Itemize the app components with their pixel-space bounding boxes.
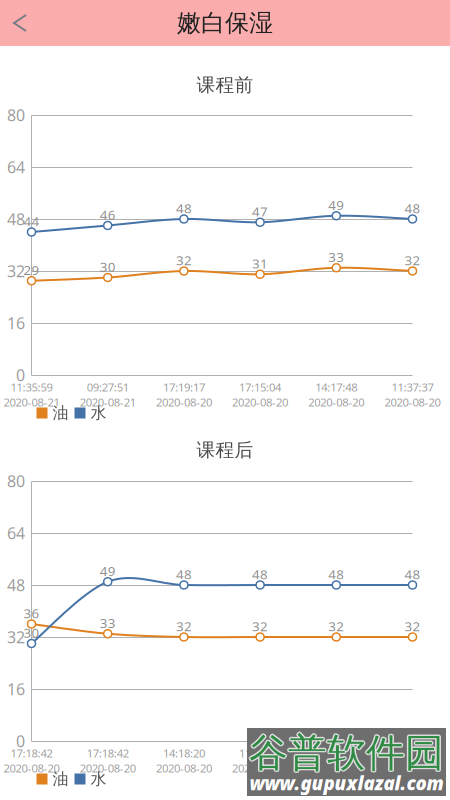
staticText: 48 [404, 565, 420, 583]
staticText: 48 [7, 574, 25, 596]
staticText: 谷普软件园 [249, 730, 444, 779]
staticText: 48 [252, 565, 268, 583]
staticText: 29 [23, 261, 39, 279]
staticText: 谷普软件园 [248, 729, 443, 777]
staticText: 80 [7, 104, 25, 126]
staticText: 44 [23, 212, 39, 230]
staticText: 30 [23, 623, 39, 642]
staticText: 嫩白保湿 [177, 8, 273, 38]
staticText: 48 [7, 208, 25, 230]
staticText: 32 [252, 617, 268, 635]
staticText: 16 [7, 678, 25, 700]
staticText: 水 [90, 403, 106, 423]
staticText: 11:37:37 [391, 379, 433, 395]
staticText: 49 [100, 562, 116, 580]
staticText: 2020-08-20 [384, 394, 440, 410]
staticText: 谷普软件园 [250, 728, 445, 776]
staticText: 2020-08-20 [156, 394, 212, 410]
staticText: 64 [7, 156, 25, 178]
staticText: 32 [7, 626, 25, 648]
staticText: 2020-08-21 [3, 394, 59, 410]
staticText: 36 [23, 604, 39, 622]
staticText: 48 [176, 199, 192, 217]
staticText: 2020-08-20 [308, 394, 364, 410]
staticText: 2020-08-20 [384, 760, 440, 776]
staticText: 11:35:59 [10, 379, 52, 395]
staticText: 30 [100, 257, 116, 276]
staticText: www.gupuxlazal.com [249, 770, 443, 796]
staticText: 48 [176, 565, 192, 583]
staticText: 水 [90, 769, 106, 789]
staticText: 32 [404, 617, 420, 635]
button[interactable]: Back [0, 0, 44, 46]
staticText: 17:15:04 [239, 379, 281, 395]
staticText: 49 [328, 196, 344, 214]
staticText: 谷普软件园 [249, 729, 444, 777]
staticText: 0 [16, 730, 25, 752]
staticText: 80 [7, 470, 25, 492]
staticText: 2020-08-20 [3, 760, 59, 776]
staticText: 谷普软件园 [250, 730, 445, 778]
staticText: 17:19:17 [163, 379, 205, 395]
staticText: 48 [328, 565, 344, 583]
staticText: 油 [52, 403, 68, 423]
staticText: 32 [7, 260, 25, 282]
staticText: 11:18:20 [239, 745, 281, 761]
staticText: 17:18:42 [10, 745, 52, 761]
staticText: 32 [176, 251, 192, 269]
staticText: 14:18:20 [163, 745, 205, 761]
staticText: 32 [176, 617, 192, 635]
staticText: 2020-08-20 [80, 760, 136, 776]
staticText: 31 [252, 254, 268, 272]
staticText: 0 [16, 364, 25, 386]
staticText: 32 [404, 251, 420, 269]
staticText: 油 [52, 769, 68, 789]
staticText: 谷普软件园 [250, 729, 445, 777]
staticText: 2020-08-21 [80, 394, 136, 410]
staticText: 2020-08-20 [156, 760, 212, 776]
staticText: 谷普软件园 [249, 727, 444, 776]
staticText: 11:18:20 [391, 745, 433, 761]
staticText: 17:18:42 [87, 745, 129, 761]
staticText: 33 [328, 248, 344, 266]
staticText: 14:17:48 [315, 379, 357, 395]
staticText: 16 [7, 312, 25, 334]
staticText: 09:27:51 [87, 379, 129, 395]
staticText: 33 [100, 614, 116, 632]
staticText: 48 [404, 199, 420, 217]
staticText: 2020-08-20 [232, 394, 288, 410]
staticText: 11:18:20 [315, 745, 357, 761]
staticText: 2020-08-20 [308, 760, 364, 776]
staticText: 课程后 [196, 438, 253, 462]
staticText: 46 [100, 205, 116, 224]
staticText: 2020-08-20 [232, 760, 288, 776]
staticText: 64 [7, 522, 25, 544]
staticText: 32 [328, 617, 344, 635]
staticText: 谷普软件园 [248, 730, 443, 778]
staticText: 47 [252, 202, 268, 220]
staticText: 谷普软件园 [248, 728, 443, 776]
staticText: 课程前 [196, 73, 253, 97]
